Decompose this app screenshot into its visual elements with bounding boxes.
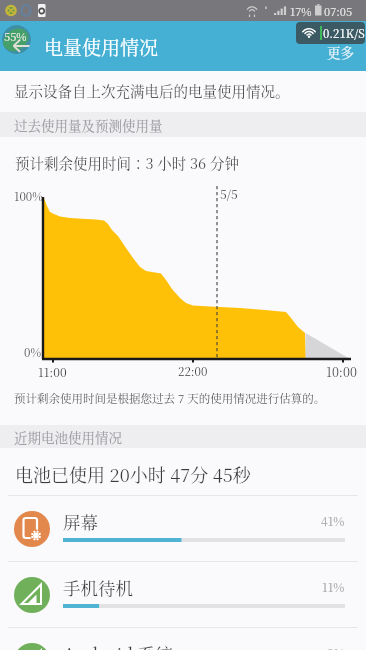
staticText: 电池已使用 20小时 47分 45秒 — [15, 461, 251, 487]
staticText: 07:05 — [324, 3, 353, 19]
staticText: 电量使用情况 — [44, 33, 159, 60]
staticText: 近期电池使用情况 — [14, 427, 122, 446]
staticText: 过去使用量及预测使用量 — [14, 115, 163, 134]
staticText: 更多 — [327, 42, 354, 61]
button[interactable]: Back — [2, 25, 31, 54]
button[interactable]: 更多 — [315, 37, 366, 66]
staticText: 0% — [24, 344, 42, 361]
staticText: 41% — [321, 512, 345, 529]
staticText: 0.21K/S — [323, 25, 365, 42]
staticText: 预计剩余使用时间是根据您过去 7 天的使用情况进行估算的。 — [14, 390, 326, 407]
button[interactable]: Android 系统 — [0, 627, 366, 650]
staticText: Android 系统 — [63, 641, 173, 650]
staticText: 11% — [322, 578, 345, 595]
staticText: 55% — [4, 28, 27, 44]
button[interactable]: 屏幕 — [0, 495, 366, 562]
staticText: 5/5 — [220, 185, 238, 202]
staticText: 11:00 — [38, 363, 67, 380]
staticText: 9% — [327, 644, 345, 650]
staticText: 手机待机 — [63, 575, 133, 600]
button[interactable]: 手机待机 — [0, 561, 366, 628]
button[interactable]: Network speed — [296, 22, 365, 44]
staticText: 显示设备自上次充满电后的电量使用情况。 — [14, 80, 290, 101]
staticText: 10:00 — [326, 363, 357, 381]
staticText: 100% — [14, 188, 43, 205]
staticText: 17% — [290, 3, 312, 19]
staticText: 22:00 — [178, 363, 208, 380]
staticText: 屏幕 — [63, 509, 98, 534]
staticText: 预计剩余使用时间：3 小时 36 分钟 — [15, 152, 239, 173]
